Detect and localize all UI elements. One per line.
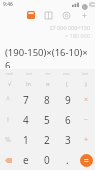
staticText: tan xyxy=(82,71,89,77)
staticText: sin xyxy=(45,71,51,77)
button[interactable]: . xyxy=(57,150,78,170)
button[interactable]: ^ xyxy=(0,89,16,110)
staticText: 1 xyxy=(23,133,29,147)
staticText: inv xyxy=(26,71,32,77)
button[interactable]: 5 xyxy=(36,110,57,130)
button[interactable]: % xyxy=(0,130,16,150)
button[interactable]: 7 xyxy=(16,89,36,110)
staticText: 9:46 xyxy=(3,1,13,8)
button[interactable]: 0 xyxy=(36,150,57,170)
button[interactable]: × xyxy=(78,89,95,110)
staticText: ln xyxy=(26,80,31,87)
staticText: √ xyxy=(8,81,12,87)
staticText: π xyxy=(46,80,50,87)
button[interactable]: sin xyxy=(38,69,57,78)
button[interactable]: tan xyxy=(76,69,95,78)
staticText: 6 xyxy=(65,113,71,127)
button[interactable]: 6 xyxy=(57,110,78,130)
button[interactable]: rad xyxy=(0,69,19,78)
staticText: 7 xyxy=(23,93,29,107)
button[interactable]: More options xyxy=(77,8,91,22)
button[interactable]: ln xyxy=(19,78,38,89)
staticText: − xyxy=(84,115,89,125)
staticText: = 180 000 xyxy=(5,32,90,39)
staticText: 27 000 000÷150 xyxy=(5,24,90,31)
staticText: + xyxy=(84,135,89,145)
button[interactable]: ( xyxy=(57,78,76,89)
button[interactable]: + xyxy=(78,130,95,150)
staticText: 8 xyxy=(44,93,50,107)
staticText: 5 xyxy=(44,113,50,127)
button[interactable]: Unit converter xyxy=(41,8,55,22)
button[interactable]: 2 xyxy=(36,130,57,150)
staticText: cos xyxy=(63,71,70,77)
button[interactable]: Calculator xyxy=(24,8,38,22)
staticText: % xyxy=(5,135,11,145)
staticText: = xyxy=(84,155,89,166)
button[interactable]: 9 xyxy=(57,89,78,110)
staticText: ! xyxy=(7,115,9,125)
button[interactable]: ! xyxy=(0,110,16,130)
button[interactable]: ) xyxy=(76,78,95,89)
staticText: × xyxy=(84,95,89,105)
staticText: 0 xyxy=(44,153,50,167)
button[interactable]: √ xyxy=(0,78,19,89)
staticText: 2 xyxy=(44,133,50,147)
staticText: (190-150)×(16-10)×6 xyxy=(5,46,90,68)
button[interactable]: cos xyxy=(57,69,76,78)
staticText: 4 xyxy=(23,113,29,127)
button[interactable]: e xyxy=(16,150,36,170)
button[interactable]: = xyxy=(78,150,95,170)
button[interactable]: 8 xyxy=(36,89,57,110)
staticText: rad xyxy=(6,71,13,77)
button[interactable]: Delete xyxy=(0,150,16,170)
button[interactable]: Currency xyxy=(59,8,73,22)
staticText: e xyxy=(23,153,29,167)
staticText: . xyxy=(66,153,69,167)
button[interactable]: 1 xyxy=(16,130,36,150)
button[interactable]: 4 xyxy=(16,110,36,130)
button[interactable]: 3 xyxy=(57,130,78,150)
staticText: 9 xyxy=(65,93,71,107)
staticText: ) xyxy=(85,80,87,87)
button[interactable]: inv xyxy=(19,69,38,78)
staticText: ^ xyxy=(6,95,11,105)
staticText: ( xyxy=(66,80,68,87)
staticText: 3 xyxy=(65,133,71,147)
button[interactable]: π xyxy=(38,78,57,89)
